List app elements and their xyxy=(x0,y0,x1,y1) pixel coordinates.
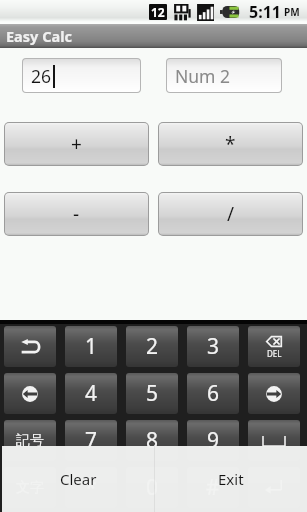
staticText: Num 2 xyxy=(175,64,231,88)
button[interactable]: Move right xyxy=(248,373,300,414)
staticText: 9 xyxy=(207,426,220,455)
button[interactable]: 5 xyxy=(126,373,178,414)
staticText: * xyxy=(225,131,236,157)
button[interactable]: + xyxy=(5,123,148,165)
staticText: 12 xyxy=(151,4,165,20)
button[interactable]: # xyxy=(187,467,239,508)
staticText: Clear xyxy=(60,469,97,489)
button[interactable]: 2 xyxy=(126,326,178,367)
staticText: 8 xyxy=(146,426,159,455)
staticText: 記号 xyxy=(16,432,44,450)
staticText: 3 xyxy=(207,332,220,361)
staticText: 4 xyxy=(85,379,98,408)
button[interactable]: Clear xyxy=(2,446,154,512)
button[interactable]: 6 xyxy=(187,373,239,414)
staticText: 5:11 xyxy=(249,1,281,23)
staticText: # xyxy=(206,473,220,502)
staticText: 6 xyxy=(207,379,220,408)
button[interactable]: * xyxy=(65,467,117,508)
staticText: 0 xyxy=(146,473,159,502)
button[interactable]: 1 xyxy=(65,326,117,367)
staticText: DEL xyxy=(267,348,282,359)
staticText: 26 xyxy=(31,64,52,88)
button[interactable]: Undo xyxy=(4,326,56,367)
button[interactable]: 26 xyxy=(23,59,140,92)
staticText: Exit xyxy=(218,469,244,489)
button[interactable]: Delete xyxy=(248,326,300,367)
button[interactable]: 4 xyxy=(65,373,117,414)
button[interactable]: Num 2 xyxy=(167,59,281,92)
staticText: * xyxy=(85,473,97,502)
button[interactable]: 9 xyxy=(187,420,239,461)
button[interactable]: 3 xyxy=(187,326,239,367)
staticText: 2 xyxy=(146,332,159,361)
button[interactable]: * xyxy=(159,123,302,165)
staticText: / xyxy=(227,201,235,227)
staticText: 1 xyxy=(85,332,98,361)
staticText: Easy Calc xyxy=(6,26,72,46)
button[interactable]: Exit xyxy=(155,446,307,512)
button[interactable]: / xyxy=(159,193,302,235)
staticText: - xyxy=(73,201,80,227)
staticText: 5 xyxy=(146,379,159,408)
button[interactable]: Move left xyxy=(4,373,56,414)
staticText: PM xyxy=(284,5,300,19)
button[interactable]: Space xyxy=(248,420,300,461)
button[interactable]: - xyxy=(5,193,148,235)
staticText: 7 xyxy=(85,426,98,455)
staticText: + xyxy=(71,131,82,157)
button[interactable]: 記号 xyxy=(4,420,56,461)
button[interactable]: 8 xyxy=(126,420,178,461)
button[interactable]: 7 xyxy=(65,420,117,461)
